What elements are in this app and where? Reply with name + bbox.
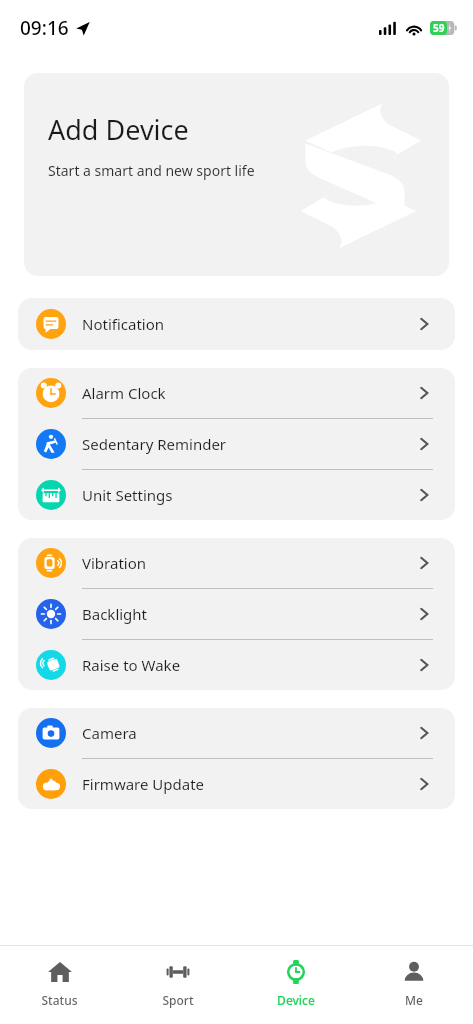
button[interactable]: Sport	[119, 946, 237, 1024]
staticText: Unit Settings	[82, 485, 173, 505]
staticText: Add Device	[48, 111, 189, 148]
button[interactable]: Vibration	[18, 538, 455, 588]
staticText: Camera	[82, 723, 137, 743]
staticText: Start a smart and new sport life	[48, 161, 255, 180]
staticText: Vibration	[82, 553, 147, 573]
staticText: 09:16	[20, 15, 69, 41]
button[interactable]: Me	[355, 946, 473, 1024]
staticText: Raise to Wake	[82, 655, 181, 675]
button[interactable]: Add Device	[24, 73, 449, 276]
staticText: Backlight	[82, 604, 148, 624]
staticText: Sedentary Reminder	[82, 434, 227, 454]
button[interactable]: Alarm Clock	[18, 368, 455, 418]
staticText: Alarm Clock	[82, 383, 166, 403]
button[interactable]: Device	[237, 946, 355, 1024]
button[interactable]: Unit Settings	[18, 470, 455, 520]
button[interactable]: Backlight	[18, 589, 455, 639]
button[interactable]: Camera	[18, 708, 455, 758]
button[interactable]: Raise to Wake	[18, 640, 455, 690]
button[interactable]: Notification	[18, 298, 455, 350]
button[interactable]: Status	[0, 946, 119, 1024]
staticText: Notification	[82, 314, 165, 334]
button[interactable]: Firmware Update	[18, 759, 455, 809]
staticText: Status	[41, 992, 78, 1008]
staticText: Me	[405, 992, 423, 1008]
staticText: 59	[433, 21, 445, 35]
staticText: Firmware Update	[82, 774, 205, 794]
button[interactable]: Sedentary Reminder	[18, 419, 455, 469]
staticText: Device	[277, 992, 315, 1008]
staticText: Sport	[162, 992, 194, 1008]
